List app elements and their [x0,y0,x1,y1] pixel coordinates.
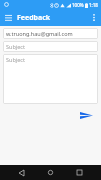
button[interactable]: More options [88,12,99,23]
button[interactable]: Recent apps [72,165,87,180]
button[interactable]: Home [43,165,58,180]
staticText: 100% [72,2,84,8]
button[interactable]: Subject [3,54,98,104]
button[interactable]: Open navigation drawer [3,12,14,23]
staticText: Subject [6,43,25,50]
staticText: 1:18 [89,2,98,8]
button[interactable]: w.truong.hau@gmail.com [3,28,98,39]
button[interactable]: Subject [3,41,98,52]
staticText: Subject [6,56,25,63]
button[interactable]: Send [79,108,93,122]
staticText: w.truong.hau@gmail.com [6,30,73,37]
staticText: Feedback [17,13,51,23]
button[interactable]: Back [14,165,29,180]
